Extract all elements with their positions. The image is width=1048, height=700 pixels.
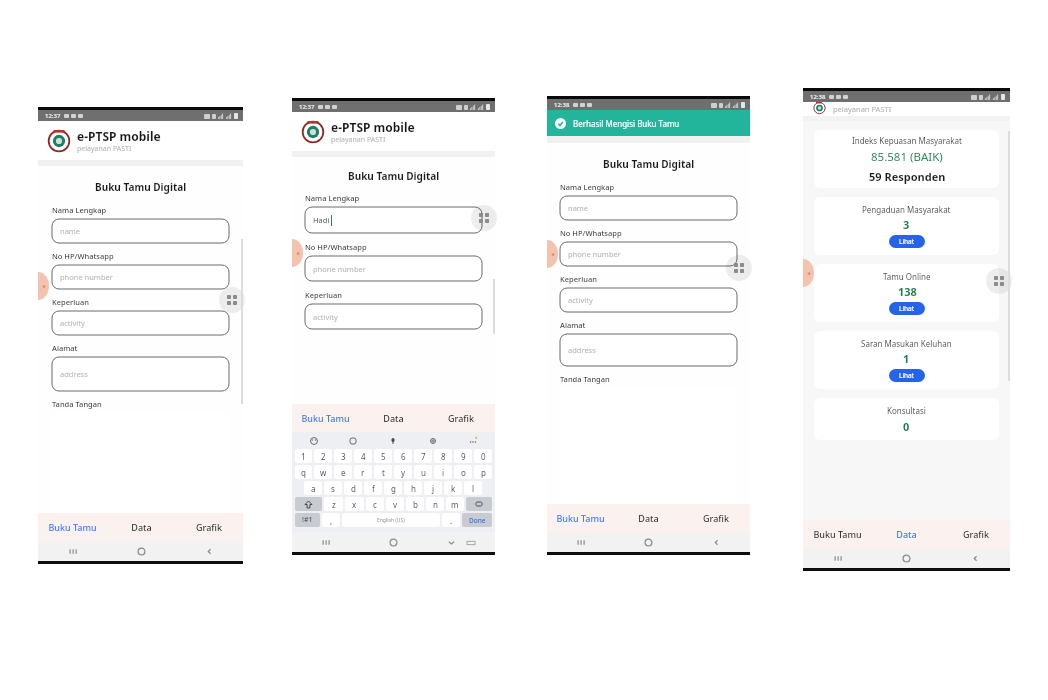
button[interactable]: Keyboard settings (413, 434, 453, 448)
button[interactable]: Emoji (294, 434, 333, 448)
button[interactable]: address (52, 357, 229, 391)
button[interactable]: Symbols (295, 513, 320, 527)
button[interactable]: Voice input (373, 434, 413, 448)
button[interactable]: 3 (334, 449, 352, 463)
button[interactable]: Done (462, 513, 492, 527)
button[interactable]: c (366, 497, 384, 511)
button[interactable]: d (344, 481, 362, 495)
button[interactable]: Saran Masukan Keluhan (814, 331, 999, 389)
button[interactable]: Data (872, 520, 941, 548)
button[interactable]: Home (359, 532, 427, 552)
button[interactable]: 5 (374, 449, 392, 463)
button[interactable]: Grafik (175, 513, 243, 541)
button[interactable]: t (374, 465, 392, 479)
button[interactable]: 2 (314, 449, 332, 463)
staticText: 5 (381, 451, 386, 462)
button[interactable]: Buku Tamu (547, 504, 614, 532)
button[interactable]: e (334, 465, 352, 479)
button[interactable]: v (386, 497, 404, 511)
button[interactable]: phone number (305, 256, 482, 281)
button[interactable]: 4 (354, 449, 372, 463)
button[interactable]: p (474, 465, 492, 479)
button[interactable]: Tamu Online (814, 264, 999, 322)
button[interactable]: g (384, 481, 402, 495)
button[interactable]: activity (560, 288, 737, 312)
button[interactable]: Menu grid (986, 268, 1012, 294)
button[interactable]: q (295, 465, 312, 479)
button[interactable]: y (394, 465, 412, 479)
button[interactable]: English (US) (342, 513, 440, 527)
button[interactable]: i (434, 465, 452, 479)
button[interactable]: activity (52, 311, 229, 335)
button[interactable]: phone number (52, 265, 229, 289)
button[interactable]: 0 (474, 449, 492, 463)
button[interactable]: a (304, 481, 322, 495)
button[interactable]: Grafik (941, 520, 1010, 548)
button[interactable]: Home (107, 541, 175, 561)
button[interactable]: Recents (292, 532, 359, 552)
button[interactable]: w (314, 465, 332, 479)
button[interactable]: n (426, 497, 444, 511)
button[interactable]: Data (359, 404, 427, 432)
button[interactable]: Recents (803, 548, 872, 568)
button[interactable]: 8 (434, 449, 452, 463)
button[interactable]: activity (305, 304, 482, 329)
button[interactable]: Menu grid (726, 255, 752, 281)
button[interactable]: 6 (394, 449, 412, 463)
button[interactable]: Recents (547, 532, 614, 552)
button[interactable]: Data (107, 513, 175, 541)
button[interactable]: Data (614, 504, 682, 532)
staticText: Nama Lengkap (52, 205, 107, 215)
button[interactable]: Back (682, 532, 750, 552)
button[interactable]: Stickers (333, 434, 373, 448)
button[interactable]: h (404, 481, 422, 495)
button[interactable]: Buku Tamu (38, 513, 107, 541)
button[interactable]: x (345, 497, 364, 511)
button[interactable]: Menu grid (219, 287, 245, 313)
button[interactable]: name (52, 219, 229, 243)
button[interactable]: j (424, 481, 442, 495)
button[interactable]: Lihat (889, 235, 925, 248)
button[interactable]: Konsultasi (814, 398, 999, 440)
button[interactable]: Indeks Kepuasan Masyarakat (814, 130, 999, 188)
button[interactable]: Backspace (466, 497, 492, 511)
button[interactable]: o (454, 465, 472, 479)
button[interactable]: Grafik (427, 404, 495, 432)
button[interactable]: k (444, 481, 462, 495)
button[interactable]: Shift (295, 497, 322, 511)
button[interactable]: Recents (38, 541, 107, 561)
button[interactable]: Lihat (889, 369, 925, 382)
button[interactable]: Buku Tamu (803, 520, 872, 548)
button[interactable]: u (414, 465, 432, 479)
button[interactable]: . (442, 513, 460, 527)
button[interactable]: f (364, 481, 382, 495)
button[interactable]: Hide keyboard (427, 532, 495, 552)
button[interactable]: phone number (560, 242, 737, 266)
button[interactable]: Hadi (305, 207, 482, 233)
button[interactable]: Pengaduan Masyarakat (814, 197, 999, 255)
button[interactable]: address (560, 334, 737, 366)
button[interactable]: Home (872, 548, 941, 568)
button[interactable]: Home (614, 532, 682, 552)
button[interactable]: r (354, 465, 372, 479)
button[interactable]: More options (453, 434, 493, 448)
button[interactable]: name (560, 196, 737, 220)
button[interactable]: 1 (295, 449, 312, 463)
staticText: 12:37 (299, 103, 315, 111)
button[interactable]: 7 (414, 449, 432, 463)
button[interactable]: Back (941, 548, 1010, 568)
button[interactable]: 9 (454, 449, 472, 463)
button[interactable]: Lihat (889, 302, 925, 315)
button[interactable]: , (322, 513, 340, 527)
button[interactable]: Buku Tamu (292, 404, 359, 432)
button[interactable]: l (464, 481, 482, 495)
button[interactable]: s (324, 481, 342, 495)
button[interactable]: b (406, 497, 424, 511)
button[interactable]: Menu grid (471, 205, 497, 231)
button[interactable]: Grafik (682, 504, 750, 532)
button[interactable]: z (324, 497, 343, 511)
button[interactable]: m (446, 497, 464, 511)
button[interactable]: Back (175, 541, 243, 561)
